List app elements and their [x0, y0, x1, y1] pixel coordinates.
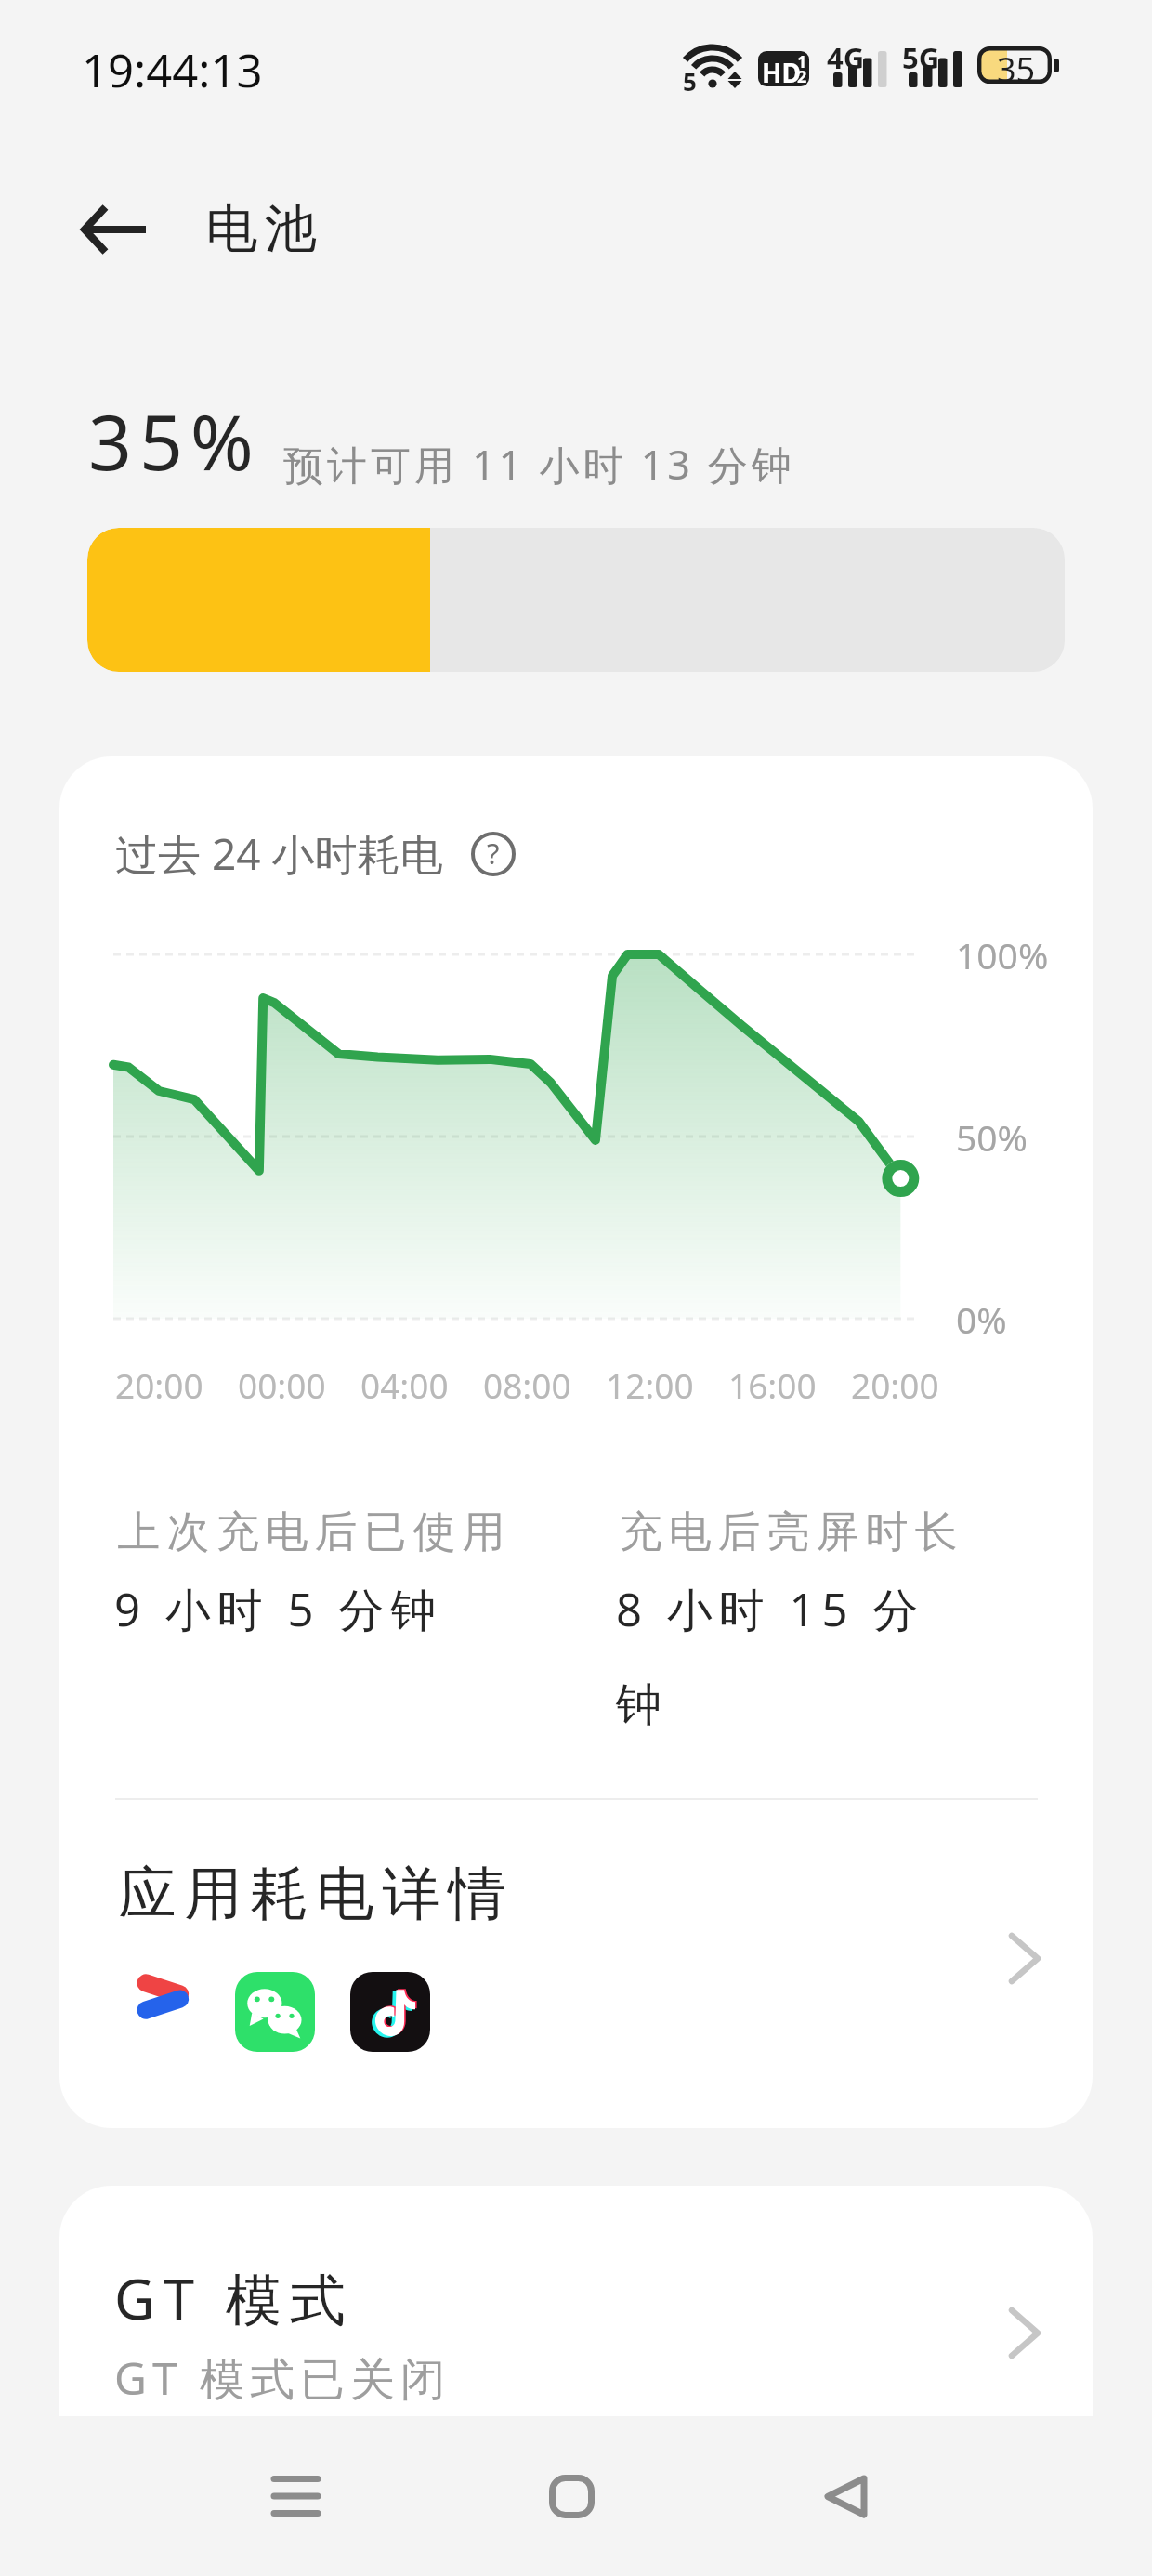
staticText: 20:00 [115, 1361, 203, 1408]
staticText: 应用耗电详情 [114, 1858, 510, 1930]
staticText: GT 模式 [114, 2260, 354, 2336]
staticText: 5 [683, 65, 697, 98]
button[interactable]: Help [466, 827, 520, 881]
staticText: 5G [902, 38, 940, 77]
staticText: 08:00 [483, 1361, 571, 1408]
staticText: 0% [956, 1295, 1007, 1344]
button[interactable]: GT 模式 [59, 2186, 1093, 2416]
staticText: 00:00 [238, 1361, 326, 1408]
staticText: 上次充电后已使用 [114, 1505, 508, 1559]
staticText: 19:44:13 [82, 39, 263, 101]
staticText: 充电后亮屏时长 [616, 1505, 961, 1559]
staticText: 1 [797, 51, 807, 73]
staticText: GT 模式已关闭 [114, 2347, 452, 2409]
staticText: 8 小时 15 分钟 [616, 1578, 943, 1734]
staticText: 50% [956, 1112, 1028, 1162]
staticText: 9 小时 5 分钟 [114, 1578, 443, 1640]
staticText: 04:00 [360, 1361, 449, 1408]
button[interactable]: Recent apps [240, 2440, 351, 2552]
button[interactable]: Back [790, 2440, 901, 2552]
staticText: 12:00 [606, 1361, 694, 1408]
staticText: 100% [956, 930, 1049, 979]
staticText: 35% [88, 388, 261, 493]
staticText: 35 [997, 46, 1036, 85]
staticText: 2 [797, 65, 807, 86]
staticText: 4G [827, 38, 865, 77]
button[interactable]: Back [59, 174, 170, 285]
staticText: 过去 24 小时耗电 [115, 824, 443, 883]
staticText: HD [762, 55, 801, 86]
staticText: ? [487, 834, 500, 873]
staticText: 预计可用 11 小时 13 分钟 [283, 437, 796, 492]
button[interactable]: Home [516, 2440, 627, 2552]
staticText: 16:00 [728, 1361, 817, 1408]
staticText: 20:00 [851, 1361, 939, 1408]
staticText: 电池 [203, 196, 320, 262]
button[interactable]: 应用耗电详情 [59, 1800, 1093, 2128]
